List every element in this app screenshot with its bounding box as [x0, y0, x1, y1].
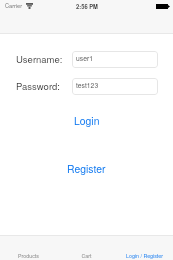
staticText: Login — [74, 113, 100, 128]
button[interactable]: Products — [0, 235, 57, 260]
button[interactable]: Login / Register — [115, 235, 173, 260]
staticText: Username: — [16, 52, 63, 66]
other: Battery full — [156, 4, 170, 9]
button[interactable]: Cart — [57, 235, 115, 260]
staticText: user1 — [76, 53, 93, 63]
staticText: test123 — [76, 80, 99, 90]
button[interactable]: user1 — [72, 51, 158, 68]
button[interactable]: test123 — [72, 78, 158, 95]
staticText: Register — [67, 161, 106, 176]
button[interactable]: Login — [0, 108, 173, 132]
staticText: Products — [18, 252, 39, 260]
staticText: Login / Register — [126, 252, 163, 260]
staticText: 2:56 PM — [76, 2, 98, 10]
staticText: Cart — [81, 252, 92, 260]
other: Wi-Fi signal — [26, 3, 33, 9]
staticText: Carrier — [5, 2, 23, 10]
button[interactable]: Register — [0, 156, 173, 180]
staticText: Password: — [16, 79, 60, 93]
